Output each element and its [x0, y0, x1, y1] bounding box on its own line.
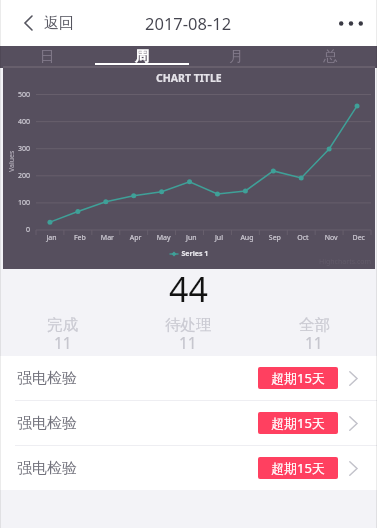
staticText: 2017-08-12 — [145, 12, 232, 34]
staticText: 11 — [179, 332, 197, 353]
button[interactable]: 强电检验 — [0, 446, 377, 490]
staticText: 强电检验 — [17, 414, 77, 433]
button[interactable]: 全部 — [251, 315, 377, 356]
button[interactable]: 周 — [95, 46, 189, 65]
button[interactable]: 日 — [0, 46, 95, 65]
staticText: 完成 — [47, 315, 78, 335]
staticText: 总 — [323, 47, 338, 65]
button[interactable]: 强电检验 — [0, 356, 377, 400]
staticText: 44 — [169, 266, 208, 312]
staticText: 周 — [135, 47, 150, 65]
button[interactable]: 月 — [189, 46, 283, 65]
staticText: 11 — [54, 332, 72, 353]
button[interactable]: 强电检验 — [0, 401, 377, 445]
staticText: 日 — [40, 47, 55, 65]
button[interactable]: 返回 — [0, 0, 86, 46]
staticText: 全部 — [299, 315, 330, 335]
button[interactable]: 完成 — [0, 315, 125, 356]
button[interactable]: 总 — [283, 46, 377, 65]
staticText: 强电检验 — [17, 459, 77, 478]
button[interactable]: More options — [325, 0, 377, 46]
staticText: 待处理 — [165, 315, 212, 335]
staticText: 11 — [305, 332, 323, 353]
staticText: 超期15天 — [271, 369, 325, 387]
staticText: 返回 — [44, 14, 74, 33]
staticText: 超期15天 — [271, 414, 325, 432]
staticText: Values — [7, 150, 17, 172]
staticText: 强电检验 — [17, 369, 77, 388]
staticText: 月 — [229, 47, 244, 65]
staticText: 超期15天 — [271, 459, 325, 477]
button[interactable]: 待处理 — [125, 315, 251, 356]
